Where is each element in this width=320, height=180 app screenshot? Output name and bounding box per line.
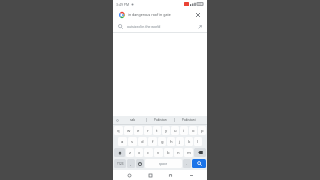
button[interactable]: b [164,148,173,157]
staticText: w [127,128,131,134]
button[interactable]: i [180,126,188,135]
staticText: space [159,162,168,166]
staticText: outsized in the world [127,24,198,29]
staticText: s [131,139,134,145]
button[interactable]: in dangerous roof in gate [116,9,204,20]
staticText: d [141,139,144,145]
staticText: 3:49 PM [116,2,130,7]
button[interactable]: Recent apps [146,171,154,179]
button[interactable]: Shift [114,148,125,157]
staticText: k [188,139,191,145]
button[interactable]: Hide keyboard [187,171,195,179]
staticText: x [138,150,141,156]
staticText: o [192,128,195,134]
staticText: f [152,139,154,145]
staticText: g [161,139,164,145]
staticText: sab [130,118,136,122]
button[interactable]: Back [166,171,174,179]
staticText: v [157,150,160,156]
staticText: i [183,128,185,134]
button[interactable]: x [135,148,143,157]
button[interactable]: r [144,126,152,135]
button[interactable]: v [154,148,163,157]
button[interactable]: y [162,126,170,135]
button[interactable]: l [194,137,202,146]
button[interactable]: h [167,137,175,146]
staticText: , [130,161,132,166]
staticText: . [186,161,188,166]
staticText: t [156,128,158,134]
staticText: q [117,128,120,134]
button[interactable]: space [145,159,182,168]
staticText: y [165,128,168,134]
button[interactable]: Clear search [195,12,201,18]
staticText: l [197,139,199,145]
staticText: p [201,128,204,134]
staticText: e [137,128,140,134]
staticText: Pakistan [154,118,167,122]
button[interactable]: u [171,126,179,135]
button[interactable]: n [174,148,183,157]
staticText: a [121,139,124,145]
button[interactable]: Comma [127,159,135,168]
staticText: j [179,139,181,145]
staticText: Pakistani [182,118,196,122]
button[interactable]: z [126,148,134,157]
button[interactable]: j [176,137,184,146]
button[interactable]: Period [183,159,191,168]
button[interactable]: Pakistan [147,116,174,124]
button[interactable]: k [185,137,193,146]
staticText: r [147,128,149,134]
button[interactable]: e [134,126,143,135]
button[interactable]: t [153,126,161,135]
button[interactable]: w [124,126,133,135]
staticText: n [177,150,180,156]
button[interactable]: c [144,148,153,157]
button[interactable]: g [158,137,166,146]
staticText: u [174,128,177,134]
button[interactable]: Home [125,171,133,179]
button[interactable]: sab [120,116,146,124]
staticText: b [167,150,170,156]
button[interactable]: d [138,137,147,146]
button[interactable]: Search [192,159,206,168]
button[interactable]: f [148,137,157,146]
button[interactable]: Backspace [194,148,206,157]
button[interactable]: q [114,126,123,135]
button[interactable]: o [189,126,197,135]
staticText: m [187,150,191,156]
button[interactable]: Voice input [115,118,120,123]
button[interactable]: s [128,137,137,146]
staticText: in dangerous roof in gate [128,12,195,17]
staticText: ?123 [117,162,124,166]
button[interactable]: a [118,137,127,146]
button[interactable]: p [198,126,206,135]
button[interactable]: Emoji [136,159,144,168]
button[interactable]: ?123 [114,159,126,168]
button[interactable]: Pakistani [175,116,202,124]
button[interactable]: m [184,148,193,157]
staticText: z [129,150,131,156]
staticText: h [170,139,173,145]
button[interactable]: outsized in the world [113,21,207,32]
staticText: c [147,150,150,156]
